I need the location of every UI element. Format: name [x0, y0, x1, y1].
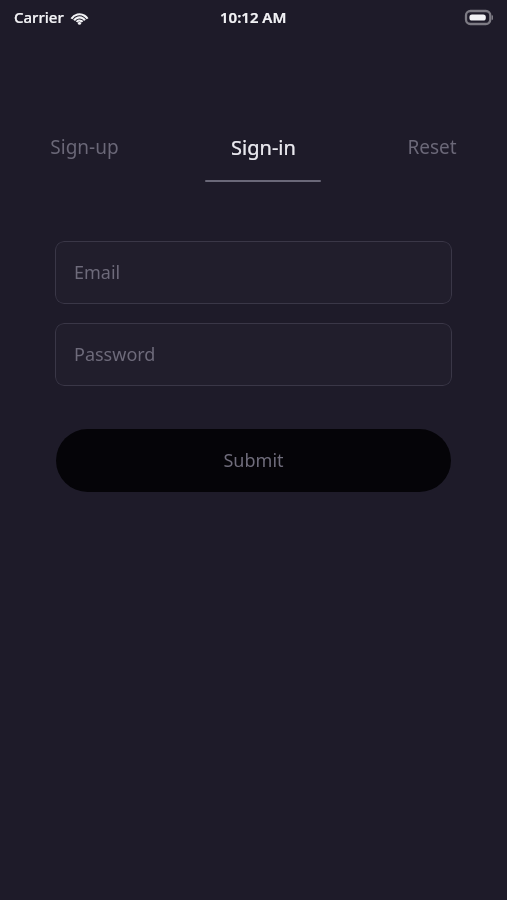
- button[interactable]: Submit: [56, 429, 451, 492]
- button[interactable]: Sign-in: [195, 130, 331, 186]
- button[interactable]: Reset: [397, 130, 467, 164]
- staticText: Sign-in: [231, 134, 296, 161]
- staticText: Reset: [407, 134, 457, 160]
- staticText: Submit: [223, 448, 284, 473]
- button[interactable]: Email: [55, 241, 452, 304]
- staticText: Carrier: [14, 7, 64, 27]
- staticText: 10:12 AM: [220, 7, 287, 27]
- staticText: Email: [74, 260, 121, 285]
- button[interactable]: Password: [55, 323, 452, 386]
- staticText: Password: [74, 342, 156, 367]
- button[interactable]: Sign-up: [40, 130, 129, 164]
- staticText: Sign-up: [50, 134, 119, 160]
